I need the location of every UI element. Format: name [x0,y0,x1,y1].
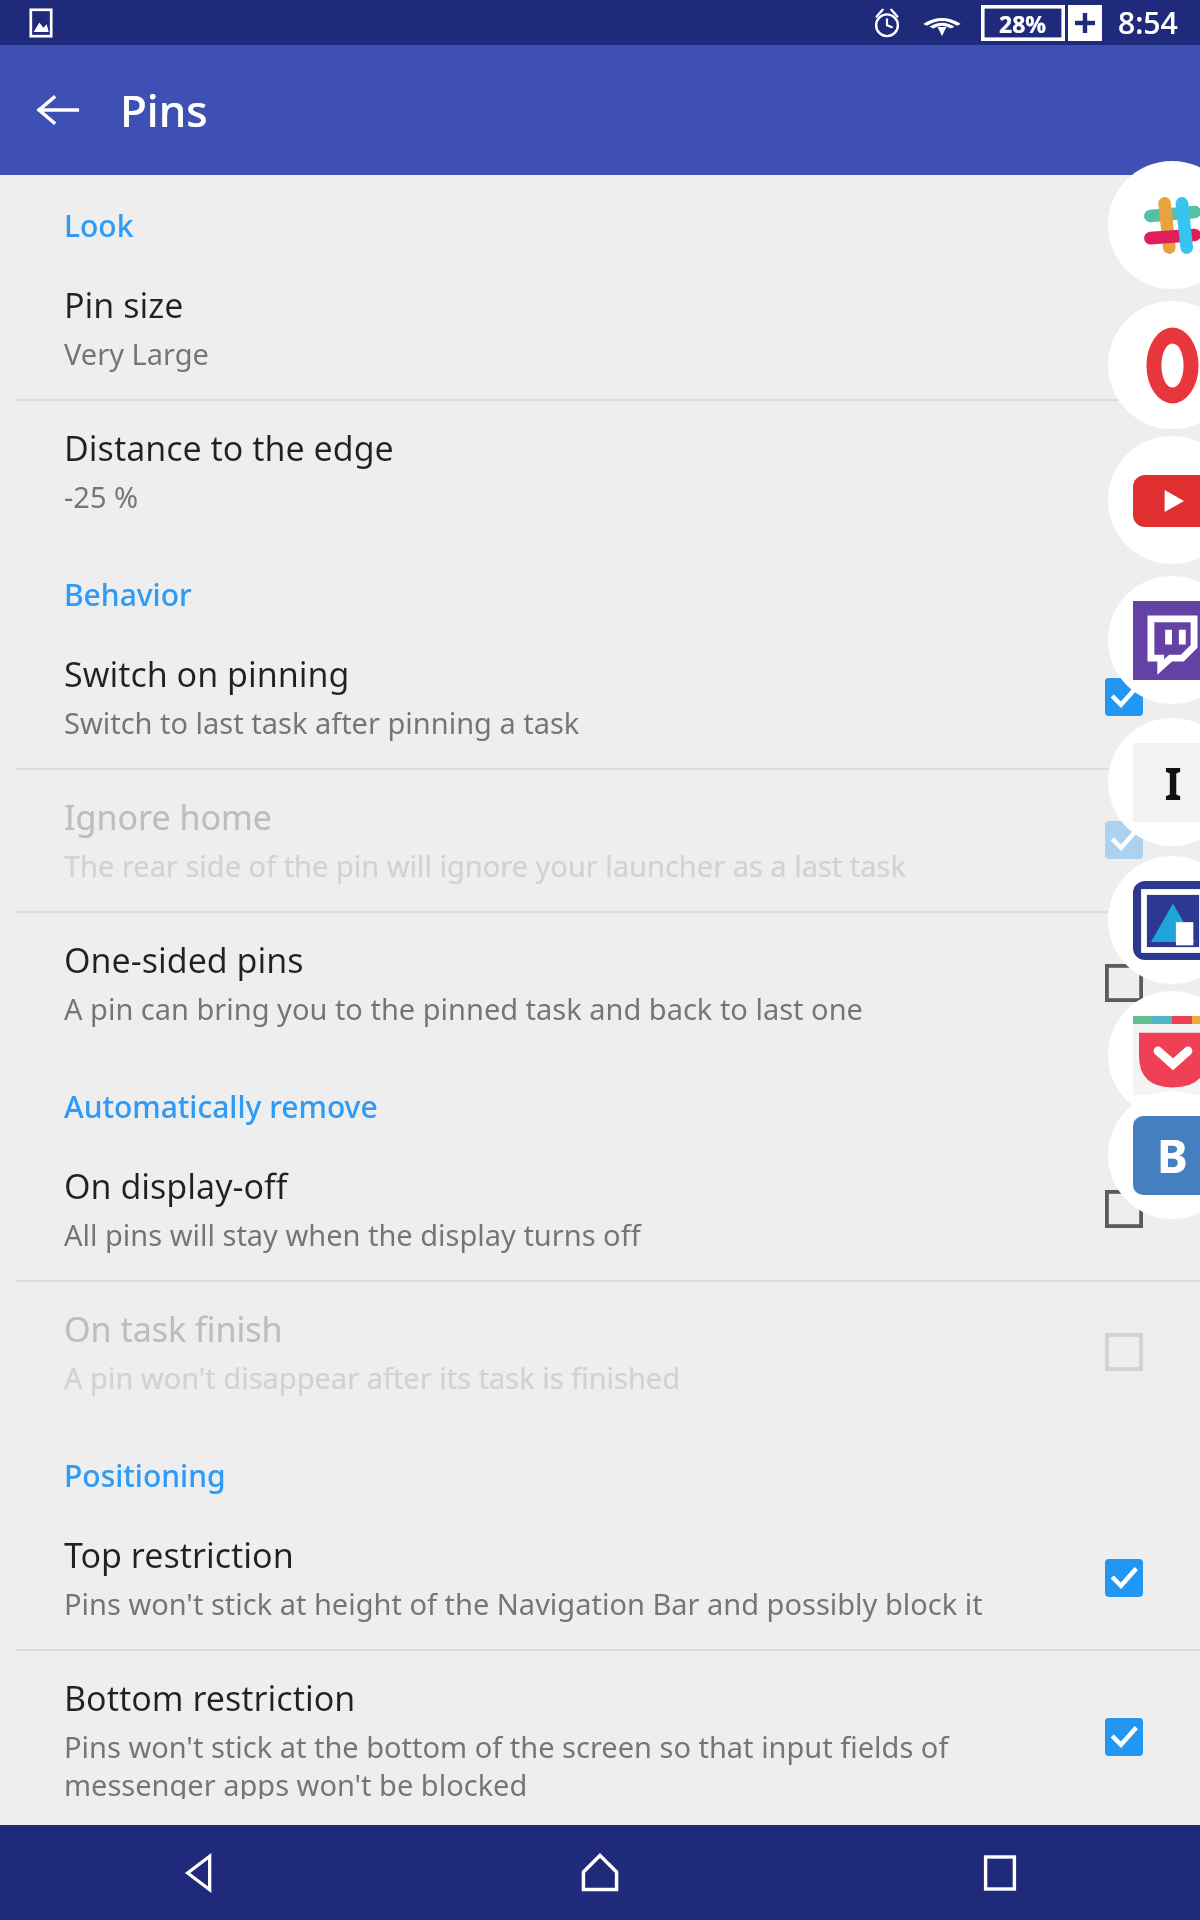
staticText: The rear side of the pin will ignore you… [64,846,906,885]
button[interactable]: Pinned app 1 [1108,301,1200,429]
staticText: Switch on pinning [64,651,350,697]
staticText: Pins won't stick at height of the Naviga… [64,1584,983,1623]
staticText: Bottom restriction [64,1675,356,1721]
button[interactable]: Pinned app 2 [1108,436,1200,564]
staticText: All pins will stay when the display turn… [64,1215,641,1254]
button[interactable]: Pinned app 7 [1108,1091,1200,1219]
button[interactable]: On display-off [0,1139,1200,1280]
button[interactable]: Checked [1100,816,1148,864]
staticText: B [1157,1124,1188,1187]
button[interactable]: Unchecked [1100,1185,1148,1233]
staticText: On task finish [64,1306,283,1352]
button[interactable]: Pinned app 6 [1108,991,1200,1119]
staticText: I [1164,753,1182,813]
staticText: Top restriction [64,1532,294,1578]
button[interactable]: Checked [1100,1554,1148,1602]
button[interactable]: Distance to the edge [0,401,1200,542]
button[interactable]: Switch on pinning [0,627,1200,768]
staticText: Positioning [64,1455,226,1496]
button[interactable]: Unchecked [1100,959,1148,1007]
staticText: Ignore home [64,794,272,840]
staticText: Very Large [64,334,209,373]
button[interactable]: Bottom restriction [0,1651,1200,1825]
button[interactable]: Pinned app 3 [1108,576,1200,704]
button[interactable]: Pinned app 0 [1108,161,1200,289]
button[interactable]: Pinned app 4 [1108,718,1200,846]
button[interactable]: Back [22,74,94,146]
button[interactable]: On task finish [0,1282,1200,1423]
staticText: A pin won't disappear after its task is … [64,1358,681,1397]
button[interactable]: Home [400,1825,800,1920]
staticText: Pins [120,80,208,140]
staticText: Behavior [64,574,192,615]
button[interactable]: Checked [1100,673,1148,721]
staticText: 8:54 [1118,2,1178,43]
staticText: Pins won't stick at the bottom of the sc… [64,1727,1080,1799]
staticText: 28% [999,8,1047,39]
staticText: Distance to the edge [64,425,394,471]
button[interactable]: Unchecked [1100,1328,1148,1376]
staticText: On display-off [64,1163,288,1209]
staticText: Look [64,205,134,246]
staticText: One-sided pins [64,937,304,983]
staticText: Pin size [64,282,184,328]
button[interactable]: Pin size [0,258,1200,399]
staticText: Automatically remove [64,1086,378,1127]
button[interactable]: Pinned app 5 [1108,856,1200,984]
button[interactable]: Recent apps [800,1825,1200,1920]
staticText: A pin can bring you to the pinned task a… [64,989,863,1028]
button[interactable]: Ignore home [0,770,1200,911]
button[interactable]: Top restriction [0,1508,1200,1649]
button[interactable]: Back [0,1825,400,1920]
staticText: Switch to last task after pinning a task [64,703,580,742]
button[interactable]: One-sided pins [0,913,1200,1054]
button[interactable]: Checked [1100,1713,1148,1761]
staticText: -25 % [64,477,139,516]
